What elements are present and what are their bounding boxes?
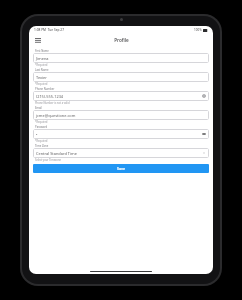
button[interactable]: • — [33, 129, 209, 139]
staticText: Time Zone — [35, 144, 49, 148]
staticText: Phone Number — [35, 87, 55, 91]
button[interactable]: Texier — [33, 72, 209, 82]
staticText: Central Standard Time — [36, 151, 202, 156]
button[interactable]: jcme@questione.com — [33, 110, 209, 120]
button[interactable]: Jimena — [33, 53, 209, 63]
staticText: Email — [35, 106, 42, 110]
staticText: Texier — [36, 75, 206, 80]
staticText: Phone Number is not a valid — [35, 101, 70, 105]
staticText: 1:08 PM Tue Sep 27 — [34, 28, 65, 32]
staticText: Jimena — [36, 56, 206, 61]
staticText: *Required — [35, 120, 48, 124]
staticText: Last Name — [35, 68, 49, 72]
staticText: Password — [35, 125, 48, 129]
staticText: First Name — [35, 49, 49, 53]
staticText: *Required — [35, 139, 48, 143]
staticText: Save — [117, 166, 126, 171]
button[interactable]: Central Standard Time — [33, 148, 209, 158]
button[interactable]: (215)-555-1234 — [33, 91, 209, 101]
staticText: *Required — [35, 63, 48, 67]
staticText: jcme@questione.com — [36, 113, 206, 118]
staticText: Profile — [114, 37, 129, 43]
staticText: *Required — [35, 82, 48, 86]
staticText: (215)-555-1234 — [36, 94, 202, 99]
staticText: 100% — [194, 28, 202, 32]
button[interactable]: Menu — [33, 36, 42, 45]
staticText: Select your Timezone — [35, 158, 61, 162]
button[interactable]: Save — [33, 164, 209, 173]
staticText: • — [36, 132, 202, 137]
